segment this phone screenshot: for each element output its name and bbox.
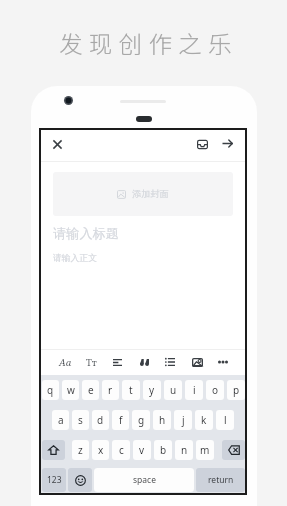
button[interactable]: a	[52, 410, 69, 430]
staticText: g	[138, 413, 145, 427]
staticText: space	[133, 474, 156, 486]
button[interactable]: b	[154, 440, 172, 460]
button[interactable]: c	[112, 440, 130, 460]
staticText: c	[119, 443, 124, 457]
staticText: x	[98, 443, 104, 457]
button[interactable]: Insert image	[189, 354, 205, 370]
staticText: w	[67, 383, 75, 397]
staticText: return	[208, 474, 234, 486]
button[interactable]: z	[72, 440, 89, 460]
button[interactable]: d	[92, 410, 109, 430]
button[interactable]: m	[196, 440, 214, 460]
staticText: 添加封面	[132, 188, 169, 200]
button[interactable]: e	[82, 380, 99, 400]
button[interactable]: t	[122, 380, 140, 400]
button[interactable]: g	[132, 410, 150, 430]
button[interactable]: i	[185, 380, 203, 400]
button[interactable]: q	[42, 380, 59, 400]
button[interactable]: Close	[46, 133, 68, 155]
button[interactable]: More	[215, 354, 231, 370]
staticText: l	[224, 413, 227, 427]
staticText: k	[201, 413, 207, 427]
button[interactable]: u	[164, 380, 182, 400]
staticText: n	[181, 443, 188, 457]
button[interactable]: y	[143, 380, 161, 400]
button[interactable]: r	[102, 380, 119, 400]
staticText: s	[78, 413, 83, 427]
staticText: f	[119, 413, 123, 427]
staticText: t	[129, 383, 133, 397]
button[interactable]: p	[227, 380, 245, 400]
button[interactable]: k	[195, 410, 213, 430]
button[interactable]: Text size	[83, 354, 99, 370]
button[interactable]: Next	[216, 132, 238, 154]
staticText: b	[160, 443, 167, 457]
button[interactable]: space	[94, 468, 194, 492]
button[interactable]: Return	[196, 468, 245, 492]
staticText: j	[182, 413, 185, 427]
button[interactable]: w	[62, 380, 79, 400]
button[interactable]: Shift	[42, 440, 65, 460]
staticText: 请输入标题	[53, 225, 119, 242]
button[interactable]: j	[174, 410, 192, 430]
button[interactable]: Save to drafts	[191, 133, 213, 155]
staticText: p	[233, 383, 240, 397]
staticText: 123	[47, 474, 62, 486]
button[interactable]: Text style	[57, 354, 73, 370]
staticText: u	[170, 383, 177, 397]
staticText: 请输入正文	[53, 253, 97, 264]
staticText: o	[212, 383, 219, 397]
button[interactable]: 添加封面	[53, 172, 233, 216]
button[interactable]: Emoji	[68, 468, 92, 492]
button[interactable]: n	[175, 440, 193, 460]
staticText: i	[193, 383, 196, 397]
staticText: y	[149, 383, 155, 397]
button[interactable]: x	[92, 440, 109, 460]
staticText: m	[200, 443, 210, 457]
staticText: e	[88, 383, 94, 397]
staticText: r	[108, 383, 113, 397]
button[interactable]: h	[153, 410, 171, 430]
button[interactable]: l	[216, 410, 234, 430]
staticText: h	[159, 413, 166, 427]
button[interactable]: Numbers	[42, 468, 66, 492]
button[interactable]: Backspace	[222, 440, 245, 460]
button[interactable]: s	[72, 410, 89, 430]
staticText: Aa	[59, 356, 72, 369]
button[interactable]: Quote	[136, 354, 152, 370]
button[interactable]: v	[133, 440, 151, 460]
staticText: a	[58, 413, 64, 427]
staticText: 发现创作之乐	[59, 26, 238, 60]
button[interactable]: f	[112, 410, 129, 430]
staticText: v	[139, 443, 145, 457]
button[interactable]: Align	[109, 354, 125, 370]
staticText: z	[78, 443, 83, 457]
button[interactable]: o	[206, 380, 224, 400]
staticText: d	[97, 413, 104, 427]
staticText: Tт	[86, 356, 97, 369]
staticText: q	[47, 383, 54, 397]
button[interactable]: List	[162, 354, 178, 370]
